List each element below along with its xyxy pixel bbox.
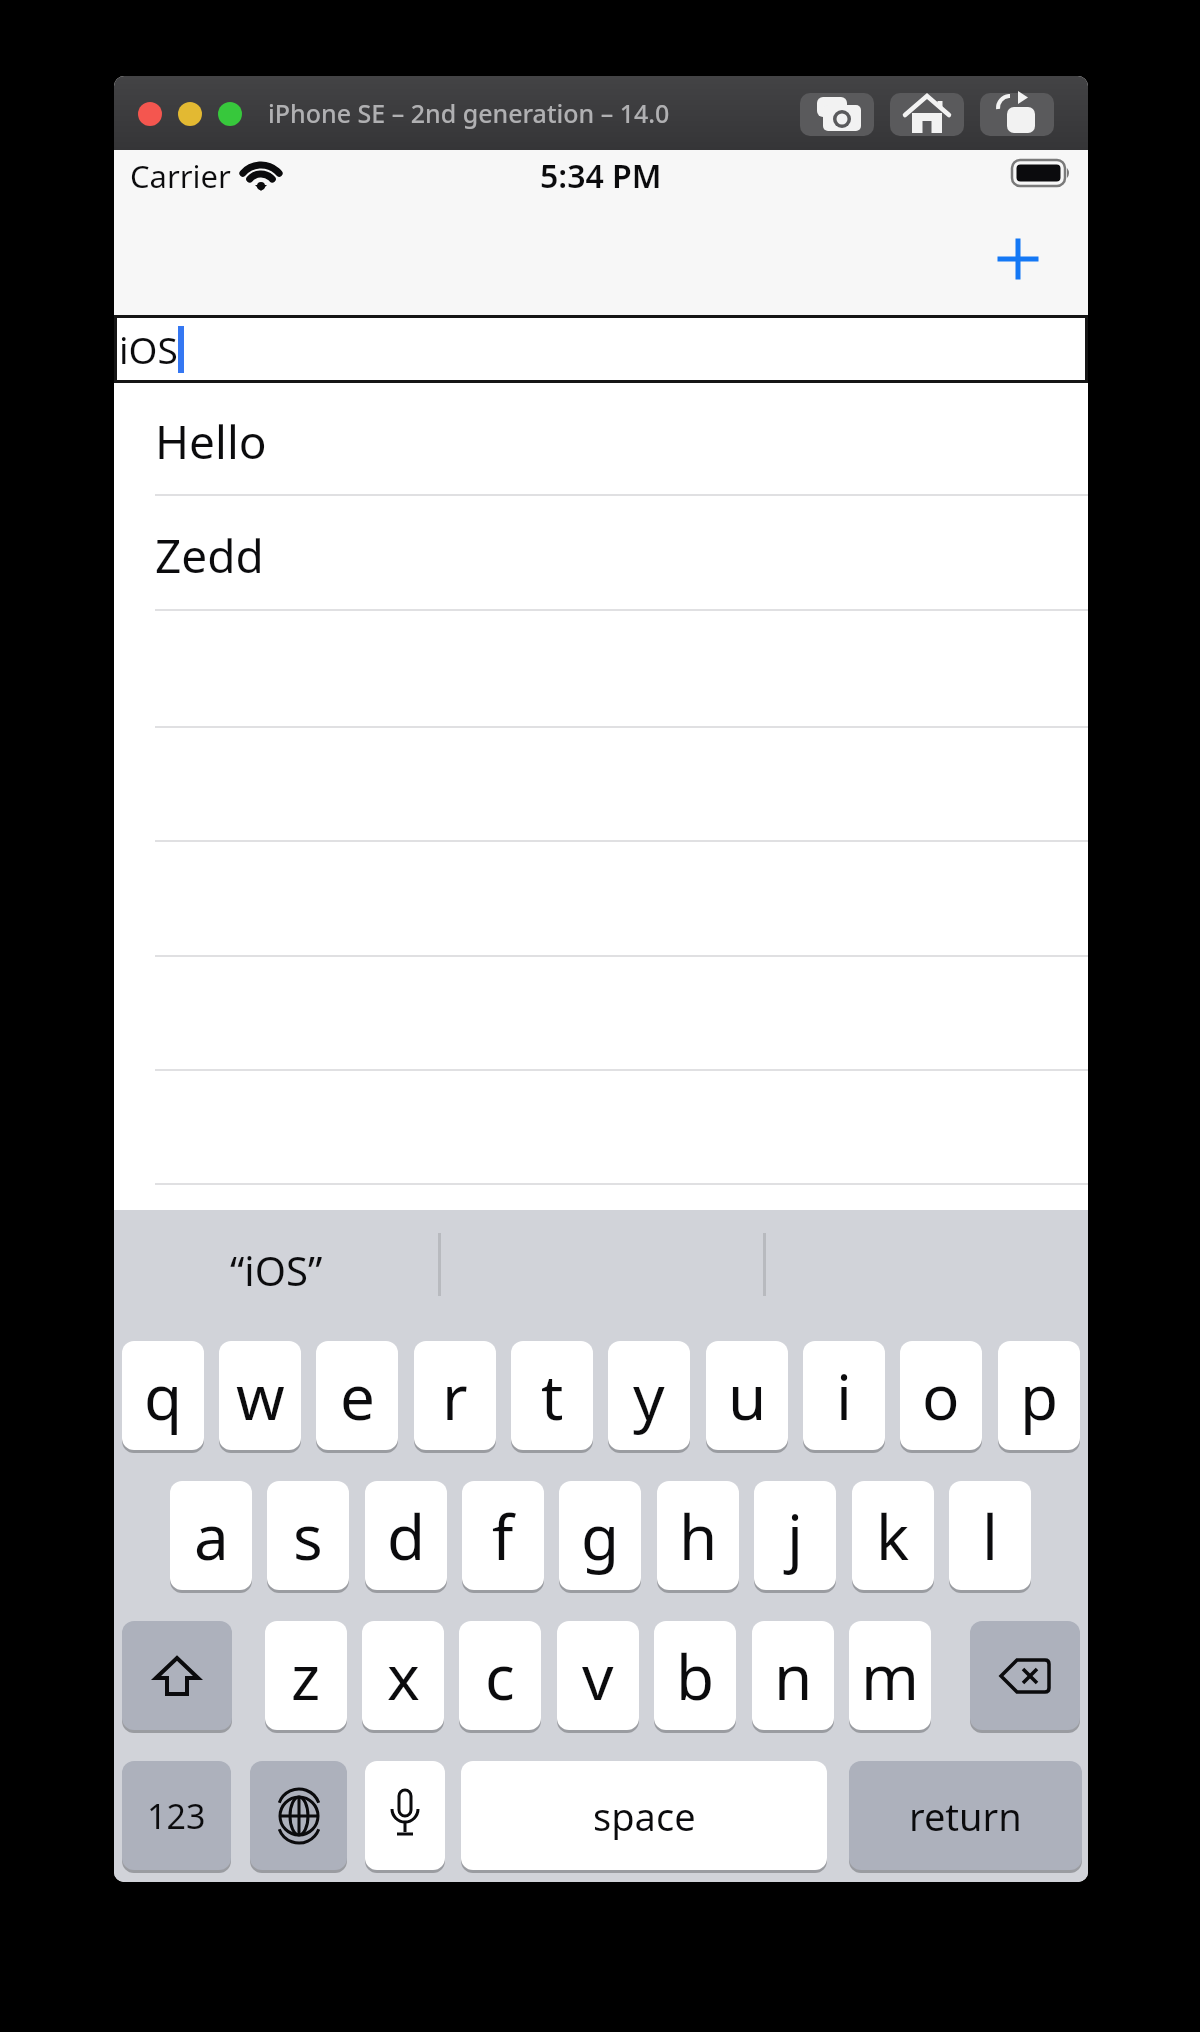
- staticText: Zedd: [155, 524, 264, 587]
- button[interactable]: a: [170, 1481, 252, 1590]
- button[interactable]: k: [852, 1481, 934, 1590]
- button[interactable]: Zedd: [155, 499, 1088, 612]
- button[interactable]: g: [559, 1481, 641, 1590]
- button[interactable]: [250, 1761, 347, 1870]
- button[interactable]: v: [557, 1621, 639, 1730]
- staticText: w: [236, 1354, 285, 1438]
- staticText: x: [387, 1634, 420, 1718]
- button[interactable]: n: [752, 1621, 834, 1730]
- staticText: b: [676, 1634, 715, 1718]
- staticText: i: [836, 1354, 852, 1438]
- staticText: g: [581, 1494, 620, 1578]
- button[interactable]: [800, 93, 874, 136]
- button[interactable]: [365, 1761, 445, 1870]
- button[interactable]: u: [706, 1341, 788, 1450]
- staticText: Carrier: [130, 155, 231, 197]
- staticText: t: [541, 1354, 564, 1438]
- staticText: f: [492, 1494, 514, 1578]
- staticText: y: [633, 1354, 665, 1438]
- button[interactable]: q: [122, 1341, 204, 1450]
- button[interactable]: i: [803, 1341, 885, 1450]
- staticText: m: [861, 1634, 919, 1718]
- staticText: e: [340, 1354, 375, 1438]
- button[interactable]: l: [949, 1481, 1031, 1590]
- staticText: space: [593, 1790, 696, 1842]
- button[interactable]: h: [657, 1481, 739, 1590]
- button[interactable]: y: [608, 1341, 690, 1450]
- button[interactable]: iOS: [114, 315, 1088, 383]
- button[interactable]: [980, 93, 1054, 136]
- button[interactable]: [988, 229, 1048, 289]
- staticText: s: [293, 1494, 323, 1578]
- button[interactable]: return: [849, 1761, 1082, 1870]
- staticText: n: [774, 1634, 813, 1718]
- button[interactable]: r: [414, 1341, 496, 1450]
- staticText: p: [1020, 1354, 1059, 1438]
- staticText: q: [144, 1354, 183, 1438]
- staticText: “iOS”: [230, 1243, 323, 1297]
- staticText: iOS: [119, 324, 178, 374]
- staticText: return: [909, 1790, 1022, 1842]
- staticText: 5:34 PM: [540, 154, 662, 198]
- staticText: d: [387, 1494, 426, 1578]
- button[interactable]: z: [265, 1621, 347, 1730]
- button[interactable]: b: [654, 1621, 736, 1730]
- button[interactable]: “iOS”: [114, 1227, 439, 1313]
- button[interactable]: c: [459, 1621, 541, 1730]
- button[interactable]: 123: [122, 1761, 231, 1870]
- staticText: iPhone SE – 2nd generation – 14.0: [268, 96, 670, 130]
- staticText: u: [728, 1354, 767, 1438]
- button[interactable]: e: [316, 1341, 398, 1450]
- button[interactable]: f: [462, 1481, 544, 1590]
- staticText: z: [291, 1634, 321, 1718]
- button[interactable]: t: [511, 1341, 593, 1450]
- button[interactable]: [970, 1621, 1080, 1730]
- button[interactable]: m: [849, 1621, 931, 1730]
- staticText: l: [982, 1494, 998, 1578]
- button[interactable]: w: [219, 1341, 301, 1450]
- button[interactable]: Hello: [155, 386, 1088, 497]
- button[interactable]: o: [900, 1341, 982, 1450]
- staticText: r: [442, 1354, 468, 1438]
- button[interactable]: p: [998, 1341, 1080, 1450]
- staticText: v: [582, 1634, 614, 1718]
- staticText: o: [922, 1354, 960, 1438]
- button[interactable]: x: [362, 1621, 444, 1730]
- staticText: a: [194, 1494, 229, 1578]
- button[interactable]: space: [461, 1761, 827, 1870]
- staticText: j: [787, 1494, 803, 1578]
- staticText: c: [485, 1634, 515, 1718]
- staticText: h: [679, 1494, 718, 1578]
- button[interactable]: [890, 93, 964, 136]
- staticText: 123: [147, 1793, 206, 1839]
- button[interactable]: s: [267, 1481, 349, 1590]
- button[interactable]: [122, 1621, 232, 1730]
- button[interactable]: j: [754, 1481, 836, 1590]
- staticText: Hello: [155, 410, 267, 473]
- button[interactable]: d: [365, 1481, 447, 1590]
- staticText: k: [876, 1494, 910, 1578]
